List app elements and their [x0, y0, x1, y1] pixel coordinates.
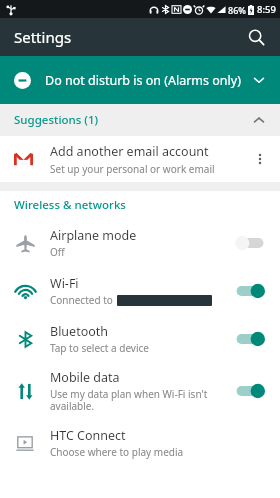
button[interactable]: Search [240, 21, 272, 53]
staticText: Do not disturb is on (Alarms only) [45, 72, 246, 89]
button[interactable]: Toggle [230, 374, 270, 408]
button[interactable]: Airplane mode [0, 219, 280, 267]
button[interactable]: Add another email account [0, 136, 280, 182]
staticText: Tap to select a device [50, 341, 149, 355]
button[interactable]: Do not disturb is on (Alarms only) [0, 56, 280, 104]
staticText: Airplane mode [50, 227, 137, 244]
staticText: Connected to [50, 293, 113, 307]
staticText: Set up your personal or work email [50, 162, 215, 176]
button[interactable]: Toggle [230, 274, 270, 308]
button[interactable]: More options [246, 145, 274, 173]
staticText: Wi-Fi [50, 275, 79, 292]
staticText: Settings [14, 27, 72, 47]
staticText: Bluetooth [50, 323, 109, 340]
button[interactable]: Suggestions (1) [0, 104, 280, 136]
button[interactable]: Wi-Fi [0, 267, 280, 315]
staticText: 8:59 [257, 3, 276, 16]
staticText: Add another email account [50, 143, 209, 160]
button[interactable]: Mobile data [0, 363, 280, 419]
staticText: Mobile data [50, 369, 120, 386]
staticText: Off [50, 245, 65, 259]
staticText: Use my data plan when Wi-Fi isn't availa… [50, 387, 224, 413]
button[interactable]: Toggle [230, 226, 270, 260]
button[interactable]: Bluetooth [0, 315, 280, 363]
staticText: 86% [228, 4, 246, 16]
staticText: Suggestions (1) [14, 112, 252, 128]
staticText: Wireless & networks [14, 197, 126, 213]
staticText: HTC Connect [50, 427, 126, 444]
button[interactable]: Toggle [230, 322, 270, 356]
staticText: Choose where to play media [50, 445, 184, 459]
button[interactable]: HTC Connect [0, 419, 280, 467]
